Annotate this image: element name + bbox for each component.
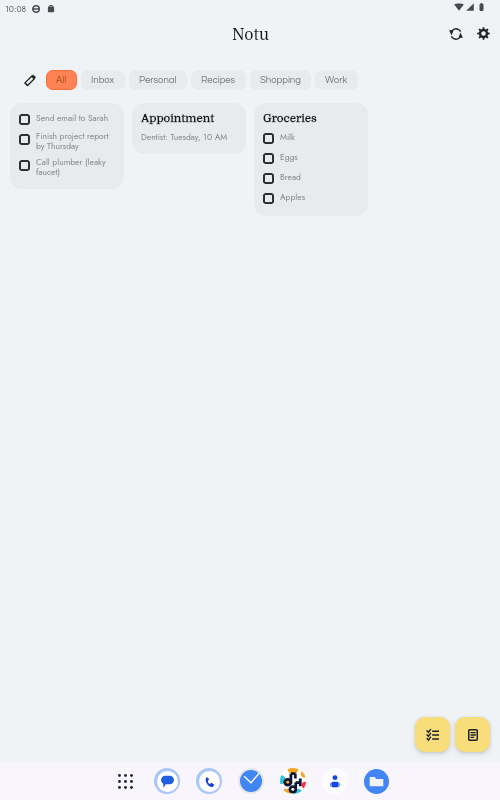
button[interactable] [19,114,30,125]
button[interactable]: Personal [129,70,187,90]
button[interactable]: Work [315,70,358,90]
button[interactable] [263,193,274,204]
button[interactable] [263,173,274,184]
button[interactable]: Groceries [254,103,368,216]
button[interactable]: Messages [154,768,180,794]
button[interactable]: Files [364,769,389,794]
button[interactable] [263,153,274,164]
staticText: Send email to Sarah [36,114,109,124]
staticText: Appointment [141,112,215,125]
button[interactable] [19,160,30,171]
staticText: Call plumber (leaky faucet) [36,158,116,178]
staticText: Groceries [263,112,317,125]
staticText: Milk [280,133,295,143]
button[interactable]: Send email to Sarah [10,103,124,189]
staticText: 10:08 [5,3,27,15]
staticText: Apples [280,193,306,203]
button[interactable]: Sync [445,23,466,44]
button[interactable] [263,133,274,144]
staticText: Notu [232,26,269,44]
staticText: All [56,75,67,85]
staticText: Bread [280,173,301,183]
button[interactable]: Edit labels [20,70,40,90]
button[interactable]: Phone [196,768,222,794]
staticText: Eggs [280,153,298,163]
staticText: Recipes [201,75,236,85]
button[interactable]: All apps [112,768,138,794]
staticText: Work [325,75,348,85]
button[interactable]: Clock [238,768,264,794]
staticText: Personal [139,75,177,85]
button[interactable]: Recipes [191,70,246,90]
button[interactable]: Music [280,768,306,794]
button[interactable]: Shopping [250,70,311,90]
button[interactable]: Appointment [132,103,246,154]
button[interactable]: Inbox [81,70,125,90]
button[interactable]: All [46,70,77,90]
staticText: Shopping [260,75,301,85]
staticText: Finish project report by Thursday [36,132,116,152]
button[interactable]: New note [455,717,490,752]
staticText: Inbox [91,75,115,85]
button[interactable]: New checklist [415,717,450,752]
button[interactable]: Contacts [322,768,348,794]
button[interactable] [19,134,30,145]
staticText: Dentist: Tuesday, 10 AM [141,131,228,143]
button[interactable]: Settings [473,23,494,44]
